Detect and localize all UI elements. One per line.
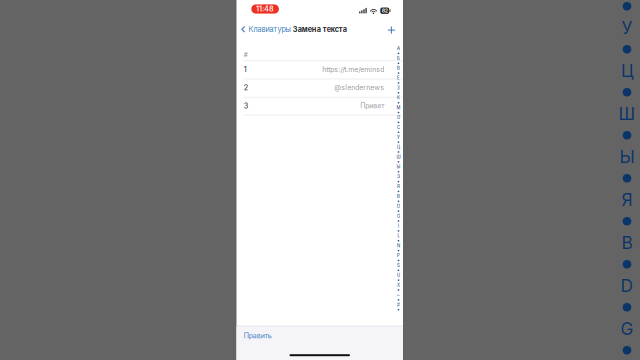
staticText: G <box>397 213 400 219</box>
staticText: G <box>620 318 633 339</box>
staticText: L <box>397 233 399 238</box>
staticText: D <box>397 204 400 209</box>
staticText: Ш <box>618 103 635 124</box>
staticText: I <box>398 223 399 229</box>
button[interactable]: # <box>236 46 403 64</box>
staticText: U <box>397 273 400 278</box>
staticText: А <box>397 46 400 51</box>
staticText: У <box>621 17 632 38</box>
staticText: B <box>621 232 632 253</box>
staticText: Я <box>621 189 632 210</box>
staticText: Привет <box>360 102 384 110</box>
staticText: Ц <box>621 60 633 81</box>
staticText: Б <box>397 56 400 61</box>
staticText: К <box>397 95 400 100</box>
staticText: Я <box>397 184 400 189</box>
staticText: 11:48 <box>256 5 274 13</box>
staticText: З <box>397 85 400 90</box>
staticText: # <box>397 302 400 307</box>
staticText: Править <box>244 331 272 340</box>
staticText: P <box>397 253 400 258</box>
staticText: 82 <box>382 8 388 14</box>
staticText: В <box>397 66 400 71</box>
staticText: D <box>620 275 633 296</box>
staticText: @slendernews <box>334 83 384 92</box>
button[interactable]: 2 <box>236 78 403 97</box>
staticText: Ы <box>619 146 634 167</box>
staticText: X <box>397 282 400 288</box>
button[interactable]: Клавиатуры <box>236 22 294 37</box>
staticText: 2 <box>244 83 248 92</box>
staticText: ~ <box>397 292 400 298</box>
staticText: О <box>397 115 400 120</box>
staticText: С <box>397 125 400 130</box>
button[interactable]: 3 <box>236 97 403 115</box>
staticText: Э <box>397 174 400 179</box>
staticText: S <box>397 263 400 268</box>
staticText: Клавиатуры <box>249 25 291 34</box>
button[interactable]: Править <box>241 329 275 343</box>
staticText: Замена текста <box>293 25 347 34</box>
staticText: B <box>397 194 400 199</box>
staticText: 1 <box>244 65 247 74</box>
staticText: # <box>244 51 248 58</box>
staticText: Ы <box>396 164 400 169</box>
staticText: Е <box>397 75 400 81</box>
staticText: Ц <box>397 144 400 150</box>
button[interactable]: Section index <box>395 46 401 312</box>
staticText: У <box>397 135 400 140</box>
staticText: N <box>397 243 400 248</box>
staticText: М <box>396 105 400 110</box>
staticText: Ш <box>396 154 400 159</box>
button[interactable]: Stop recording <box>251 4 279 14</box>
staticText: https://t.me/eminsd <box>322 65 384 74</box>
button[interactable]: 1 <box>236 60 403 78</box>
button[interactable]: Add <box>384 23 399 38</box>
staticText: 3 <box>244 101 249 110</box>
